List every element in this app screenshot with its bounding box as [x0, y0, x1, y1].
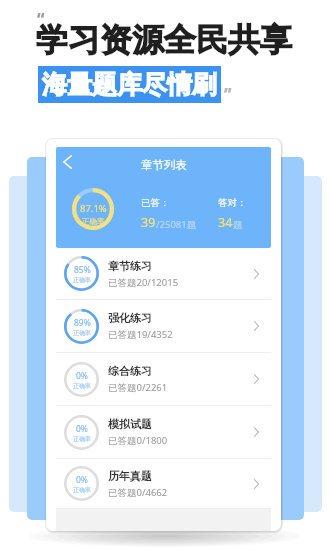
staticText: 答对： [218, 197, 247, 209]
staticText: 章节列表 [141, 158, 187, 172]
staticText: 87.1% [80, 202, 107, 215]
staticText: 正确率 [73, 329, 91, 337]
button[interactable]: 0% [56, 406, 271, 458]
button[interactable]: 0% [56, 353, 271, 405]
staticText: “ [37, 8, 45, 28]
staticText: 正确率 [73, 276, 91, 284]
staticText: 正确率 [73, 435, 91, 443]
staticText: 章节练习 [108, 259, 152, 273]
button[interactable]: 89% [56, 300, 271, 352]
staticText: /25081题 [156, 218, 197, 231]
staticText: 已答题0/4662 [108, 486, 168, 499]
staticText: 模拟试题 [108, 417, 152, 431]
staticText: 正确率 [73, 486, 91, 494]
staticText: 0% [76, 423, 88, 435]
staticText: 已答题19/4352 [108, 328, 173, 341]
staticText: 89% [74, 317, 91, 329]
staticText: 39 [141, 214, 156, 231]
staticText: 强化练习 [108, 311, 152, 325]
staticText: 85% [74, 264, 91, 276]
staticText: 正确率 [82, 217, 105, 226]
staticText: 已答题0/2261 [108, 381, 168, 394]
button[interactable]: Back [56, 149, 80, 175]
staticText: 0% [76, 474, 88, 486]
staticText: 已答题20/12015 [108, 276, 179, 289]
button[interactable]: 0% [56, 459, 271, 508]
staticText: 正确率 [73, 382, 91, 390]
staticText: 已答： [141, 197, 170, 209]
staticText: 历年真题 [108, 469, 152, 483]
staticText: 已答题0/1800 [108, 434, 168, 447]
staticText: 0% [76, 370, 88, 382]
button[interactable]: 85% [56, 248, 271, 299]
staticText: ” [224, 83, 232, 103]
staticText: 学习资源全民共享 [36, 20, 292, 60]
staticText: 题 [233, 219, 243, 231]
staticText: 34 [218, 214, 233, 231]
staticText: 海量题库尽情刷 [42, 69, 217, 100]
staticText: 综合练习 [108, 364, 152, 378]
